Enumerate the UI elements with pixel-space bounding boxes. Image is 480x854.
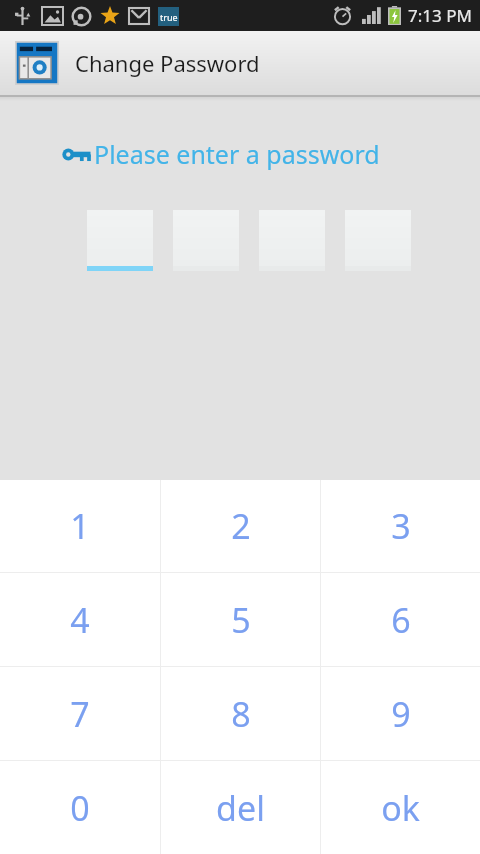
button[interactable]: 1 [0, 480, 160, 572]
staticText: Change Password [75, 48, 260, 78]
button[interactable] [87, 210, 153, 271]
staticText: ok [381, 785, 420, 831]
staticText: 5 [231, 597, 251, 643]
staticText: Please enter a password [94, 137, 380, 171]
staticText: 6 [391, 597, 411, 643]
button[interactable]: 5 [161, 573, 320, 666]
button[interactable]: ok [321, 761, 480, 854]
staticText: 7 [70, 691, 90, 737]
staticText: 1 [70, 503, 90, 549]
staticText: del [216, 785, 265, 831]
button[interactable]: 8 [161, 667, 320, 760]
staticText: 9 [391, 691, 411, 737]
button[interactable]: 6 [321, 573, 480, 666]
button[interactable]: 0 [0, 761, 160, 854]
button[interactable]: 4 [0, 573, 160, 666]
staticText: 8 [231, 691, 251, 737]
button[interactable]: 3 [321, 480, 480, 572]
button[interactable]: 2 [161, 480, 320, 572]
staticText: 7:13 PM [408, 4, 472, 27]
button[interactable]: 9 [321, 667, 480, 760]
staticText: 4 [70, 597, 90, 643]
button[interactable]: del [161, 761, 320, 854]
staticText: 0 [70, 785, 90, 831]
staticText: true [160, 11, 178, 23]
staticText: 2 [231, 503, 251, 549]
staticText: 3 [391, 503, 411, 549]
button[interactable]: 7 [0, 667, 160, 760]
